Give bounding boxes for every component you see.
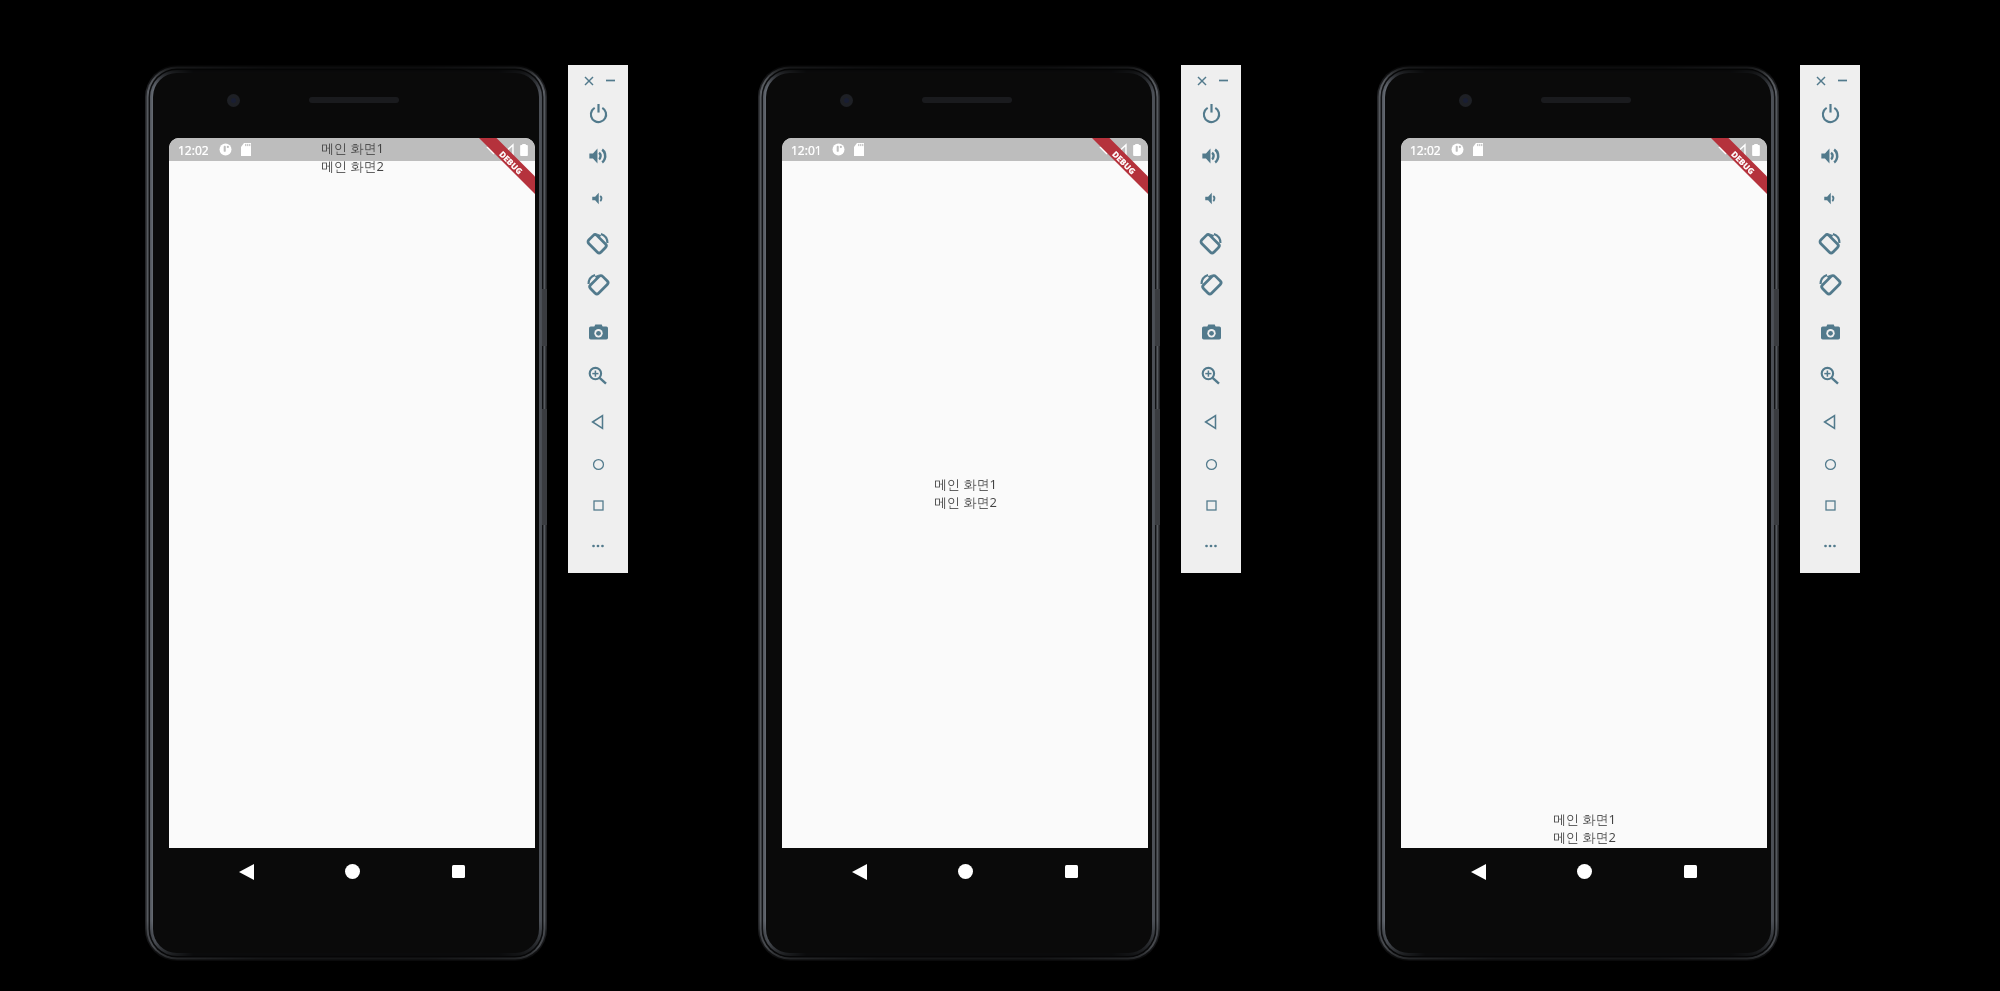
- button[interactable]: Power: [1808, 92, 1852, 134]
- button[interactable]: Zoom: [1189, 355, 1233, 397]
- button[interactable]: Minimize: [1214, 71, 1233, 90]
- button[interactable]: Close: [579, 71, 598, 90]
- button[interactable]: Minimize: [601, 71, 620, 90]
- button[interactable]: Back: [1189, 401, 1233, 443]
- button[interactable]: Home: [1189, 443, 1233, 485]
- button[interactable]: Overview: [576, 484, 620, 526]
- button[interactable]: More: [1808, 525, 1852, 567]
- staticText: 메인 화면2: [934, 493, 997, 511]
- button[interactable]: Volume up: [1189, 135, 1233, 177]
- button[interactable]: Rotate left: [1808, 221, 1852, 263]
- button[interactable]: Overview: [1808, 484, 1852, 526]
- button[interactable]: Volume down: [1189, 177, 1233, 219]
- button[interactable]: Recents: [1673, 848, 1707, 895]
- button[interactable]: Rotate left: [1189, 221, 1233, 263]
- button[interactable]: Zoom: [576, 355, 620, 397]
- button[interactable]: Zoom: [1808, 355, 1852, 397]
- button[interactable]: Back: [1461, 848, 1495, 895]
- button[interactable]: Power: [576, 92, 620, 134]
- button[interactable]: Screenshot: [576, 311, 620, 353]
- button[interactable]: Home: [576, 443, 620, 485]
- button[interactable]: Minimize: [1833, 71, 1852, 90]
- button[interactable]: Recents: [1054, 848, 1088, 895]
- button[interactable]: More: [1189, 525, 1233, 567]
- button[interactable]: Rotate right: [576, 262, 620, 304]
- staticText: 메인 화면1: [934, 475, 997, 493]
- staticText: 메인 화면1: [1553, 810, 1616, 828]
- staticText: DEBUG: [1729, 148, 1758, 177]
- button[interactable]: Back: [842, 848, 876, 895]
- staticText: DEBUG: [497, 148, 526, 177]
- button[interactable]: Volume down: [576, 177, 620, 219]
- staticText: 메인 화면2: [321, 157, 384, 175]
- button[interactable]: Screenshot: [1189, 311, 1233, 353]
- button[interactable]: Volume down: [1808, 177, 1852, 219]
- staticText: 메인 화면1: [321, 139, 384, 157]
- staticText: 12:01: [791, 142, 822, 158]
- button[interactable]: Volume up: [1808, 135, 1852, 177]
- button[interactable]: More: [576, 525, 620, 567]
- button[interactable]: Home: [948, 848, 982, 895]
- staticText: DEBUG: [1110, 148, 1139, 177]
- staticText: 12:02: [1410, 142, 1441, 158]
- button[interactable]: Power: [1189, 92, 1233, 134]
- button[interactable]: Recents: [441, 848, 475, 895]
- button[interactable]: Home: [1567, 848, 1601, 895]
- button[interactable]: Rotate left: [576, 221, 620, 263]
- button[interactable]: Screenshot: [1808, 311, 1852, 353]
- button[interactable]: Overview: [1189, 484, 1233, 526]
- staticText: 메인 화면2: [1553, 828, 1616, 846]
- button[interactable]: Close: [1811, 71, 1830, 90]
- button[interactable]: Rotate right: [1808, 262, 1852, 304]
- staticText: 12:02: [178, 142, 209, 158]
- button[interactable]: Home: [1808, 443, 1852, 485]
- button[interactable]: Back: [576, 401, 620, 443]
- button[interactable]: Rotate right: [1189, 262, 1233, 304]
- button[interactable]: Home: [335, 848, 369, 895]
- button[interactable]: Volume up: [576, 135, 620, 177]
- button[interactable]: Back: [1808, 401, 1852, 443]
- button[interactable]: Back: [229, 848, 263, 895]
- button[interactable]: Close: [1192, 71, 1211, 90]
